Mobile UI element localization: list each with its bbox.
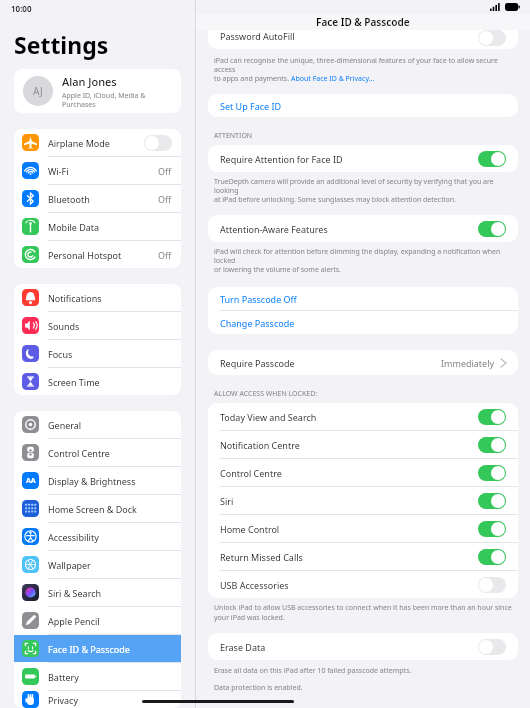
button[interactable]: Wallpaper xyxy=(14,551,181,578)
button[interactable]: Change Passcode xyxy=(208,311,518,334)
button[interactable]: Face ID & Passcode xyxy=(14,635,181,662)
staticText: Off xyxy=(158,193,172,205)
staticText: TrueDepth camera will provide an additio… xyxy=(214,177,512,195)
staticText: AA xyxy=(26,476,36,486)
staticText: Home Screen & Dock xyxy=(48,503,137,515)
staticText: Require Passcode xyxy=(220,357,295,369)
staticText: Siri xyxy=(220,495,234,507)
staticText: Apple Pencil xyxy=(48,615,100,627)
button[interactable]: Bluetooth xyxy=(14,185,181,212)
staticText: Change Passcode xyxy=(220,317,295,329)
staticText: Home Control xyxy=(220,523,280,535)
button[interactable] xyxy=(478,151,506,167)
button[interactable]: Mobile Data xyxy=(14,213,181,240)
button[interactable]: Erase Data xyxy=(208,633,518,660)
staticText: iPad can recognise the unique, three-dim… xyxy=(214,56,512,74)
button[interactable]: Sounds xyxy=(14,312,181,339)
button[interactable]: Control Centre xyxy=(208,459,518,486)
button[interactable] xyxy=(478,493,506,509)
button[interactable] xyxy=(478,521,506,537)
staticText: ALLOW ACCESS WHEN LOCKED: xyxy=(214,389,318,399)
button[interactable]: Siri xyxy=(208,487,518,514)
staticText: Accessibility xyxy=(48,531,99,543)
staticText: Apple ID, iCloud, Media & Purchases xyxy=(62,91,172,109)
staticText: Erase all data on this iPad after 10 fai… xyxy=(214,666,412,676)
button[interactable] xyxy=(478,30,506,46)
staticText: Bluetooth xyxy=(48,193,90,205)
button[interactable]: USB Accessories xyxy=(208,571,518,598)
staticText: Control Centre xyxy=(48,447,110,459)
button[interactable]: Screen Time xyxy=(14,368,181,395)
button[interactable] xyxy=(478,549,506,565)
button[interactable]: Control Centre xyxy=(14,439,181,466)
staticText: Set Up Face ID xyxy=(220,100,282,112)
button[interactable]: AA xyxy=(14,467,181,494)
staticText: Attention-Aware Features xyxy=(220,223,328,235)
button[interactable] xyxy=(478,577,506,593)
staticText: Off xyxy=(158,249,172,261)
staticText: Immediately xyxy=(441,357,495,369)
staticText: Face ID & Passcode xyxy=(316,15,410,29)
staticText: Turn Passcode Off xyxy=(220,293,297,305)
staticText: Off xyxy=(158,165,172,177)
staticText: AJ xyxy=(33,84,43,98)
button[interactable]: Battery xyxy=(14,663,181,690)
staticText: Mobile Data xyxy=(48,221,100,233)
button[interactable]: Attention-Aware Features xyxy=(208,215,518,242)
staticText: Notification Centre xyxy=(220,439,300,451)
staticText: USB Accessories xyxy=(220,579,289,591)
button[interactable]: Require Passcode xyxy=(208,350,518,375)
button[interactable]: Wi-Fi xyxy=(14,157,181,184)
staticText: Require Attention for Face ID xyxy=(220,153,343,165)
button[interactable]: Set Up Face ID xyxy=(208,94,518,117)
staticText: Siri & Search xyxy=(48,587,102,599)
staticText: your iPad was locked. xyxy=(214,613,285,623)
staticText: Settings xyxy=(14,29,109,60)
staticText: General xyxy=(48,419,82,431)
button[interactable]: Home Screen & Dock xyxy=(14,495,181,522)
button[interactable] xyxy=(144,135,172,151)
button[interactable] xyxy=(478,639,506,655)
button[interactable]: Password AutoFill xyxy=(208,30,518,49)
button[interactable]: Today View and Search xyxy=(208,403,518,430)
button[interactable]: Personal Hotspot xyxy=(14,241,181,268)
button[interactable]: Notifications xyxy=(14,284,181,311)
button[interactable]: Notification Centre xyxy=(208,431,518,458)
button[interactable] xyxy=(478,221,506,237)
staticText: Sounds xyxy=(48,320,80,332)
button[interactable] xyxy=(478,437,506,453)
button[interactable]: Siri & Search xyxy=(14,579,181,606)
staticText: Today View and Search xyxy=(220,411,317,423)
button[interactable]: Turn Passcode Off xyxy=(208,287,518,310)
staticText: to apps and payments. xyxy=(214,74,291,84)
staticText: Unlock iPad to allow USB accessories to … xyxy=(214,603,512,613)
staticText: Control Centre xyxy=(220,467,282,479)
button[interactable]: Airplane Mode xyxy=(14,129,181,156)
staticText: Display & Brightness xyxy=(48,475,136,487)
staticText: Wi-Fi xyxy=(48,165,69,177)
button[interactable]: AJ xyxy=(14,69,181,113)
staticText: Focus xyxy=(48,348,73,360)
staticText: Personal Hotspot xyxy=(48,249,122,261)
button[interactable]: Home Control xyxy=(208,515,518,542)
staticText: Face ID & Passcode xyxy=(48,643,130,655)
button[interactable] xyxy=(478,465,506,481)
staticText: Screen Time xyxy=(48,376,100,388)
staticText: Data protection is enabled. xyxy=(214,683,303,693)
button[interactable]: Apple Pencil xyxy=(14,607,181,634)
staticText: Wallpaper xyxy=(48,559,91,571)
staticText: Notifications xyxy=(48,292,102,304)
staticText: Airplane Mode xyxy=(48,137,110,149)
button[interactable]: Privacy xyxy=(14,691,181,708)
button[interactable]: Accessibility xyxy=(14,523,181,550)
button[interactable]: Require Attention for Face ID xyxy=(208,145,518,172)
staticText: Return Missed Calls xyxy=(220,551,303,563)
staticText: or lowering the volume of some alerts. xyxy=(214,265,341,275)
staticText: Password AutoFill xyxy=(220,30,295,42)
button[interactable]: About Face ID & Privacy... xyxy=(291,74,375,84)
button[interactable] xyxy=(478,409,506,425)
button[interactable]: Return Missed Calls xyxy=(208,543,518,570)
button[interactable]: Focus xyxy=(14,340,181,367)
staticText: Alan Jones xyxy=(62,74,117,89)
button[interactable]: General xyxy=(14,411,181,438)
